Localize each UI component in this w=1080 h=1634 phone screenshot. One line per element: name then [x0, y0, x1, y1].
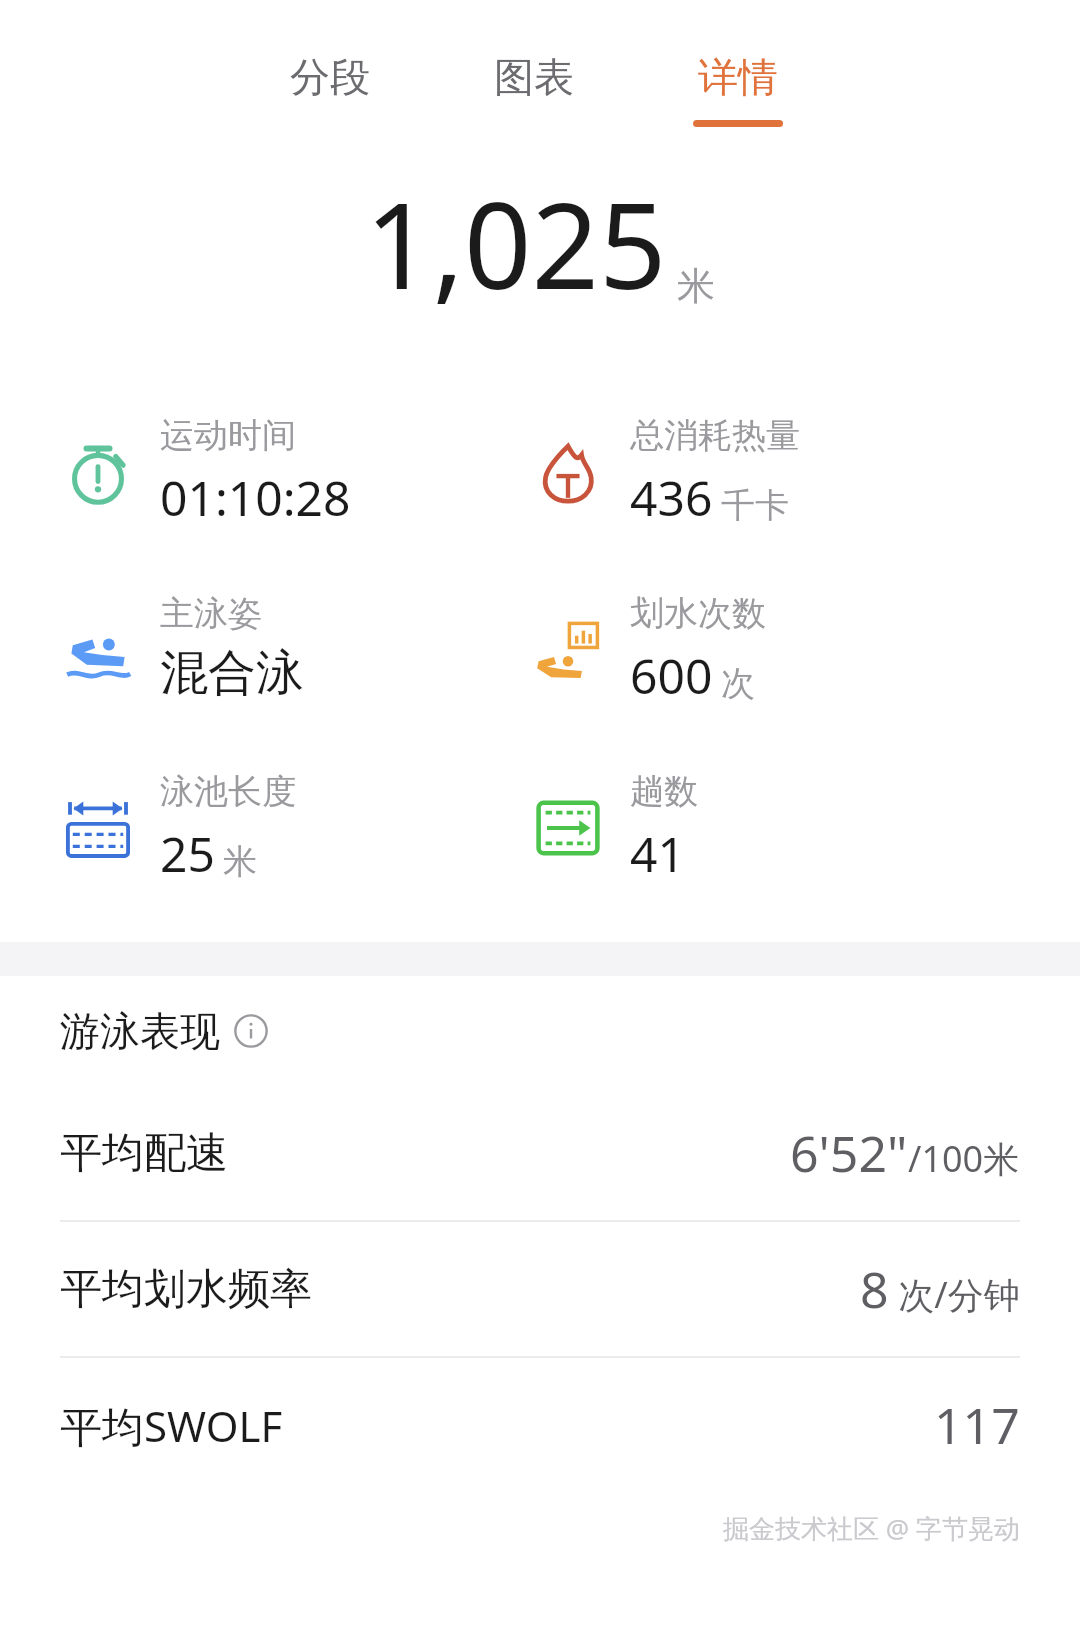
staticText: /100米 [908, 1134, 1020, 1183]
staticText: 117 [934, 1391, 1020, 1459]
button[interactable]: 趟数 [518, 770, 1080, 886]
button[interactable]: 平均划水频率 [0, 1222, 1080, 1356]
staticText: 米 [677, 262, 715, 310]
staticText: 600 [630, 643, 713, 708]
staticText: 千卡 [721, 484, 789, 527]
staticText: 25 [160, 821, 215, 886]
staticText: 图表 [494, 52, 574, 102]
staticText: 1,025 [365, 163, 667, 324]
button[interactable]: 平均配速 [0, 1086, 1080, 1220]
staticText: 次 [721, 662, 755, 705]
staticText: 8 [860, 1255, 889, 1323]
button[interactable]: 图表 [474, 0, 594, 120]
button[interactable]: 详情 [678, 0, 798, 127]
staticText: 41 [630, 821, 685, 886]
button[interactable]: 主泳姿 [0, 592, 518, 703]
button[interactable]: 划水次数 [518, 592, 1080, 708]
button[interactable]: 泳池长度 [0, 770, 518, 886]
staticText: 436 [630, 465, 713, 530]
staticText: 掘金技术社区 @ 字节晃动 [723, 1510, 1020, 1546]
staticText: 平均划水频率 [60, 1263, 312, 1316]
staticText: 划水次数 [630, 592, 766, 635]
staticText: 游泳表现 [60, 1006, 220, 1056]
staticText: 次/分钟 [889, 1270, 1020, 1319]
staticText: 平均SWOLF [60, 1397, 283, 1454]
button[interactable]: Info [234, 1014, 268, 1048]
button[interactable]: 平均SWOLF [0, 1358, 1080, 1492]
staticText: 混合泳 [160, 643, 304, 703]
staticText: 总消耗热量 [630, 414, 800, 457]
button[interactable]: 运动时间 [0, 414, 518, 530]
staticText: 运动时间 [160, 414, 296, 457]
staticText: 泳池长度 [160, 770, 296, 813]
staticText: 主泳姿 [160, 592, 262, 635]
staticText: 趟数 [630, 770, 698, 813]
button[interactable]: 分段 [270, 0, 390, 120]
staticText: 6'52" [790, 1119, 908, 1187]
staticText: 详情 [698, 52, 778, 102]
staticText: 01:10:28 [160, 465, 351, 530]
button[interactable]: 总消耗热量 [518, 414, 1080, 530]
staticText: 分段 [290, 52, 370, 102]
staticText: 平均配速 [60, 1127, 228, 1180]
staticText: 米 [223, 840, 257, 883]
